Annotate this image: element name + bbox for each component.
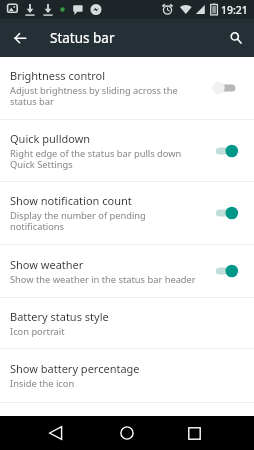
staticText: Quick pulldown (10, 131, 91, 146)
staticText: Status bar (50, 29, 115, 47)
button[interactable]: Recents (172, 416, 216, 450)
staticText: Brightness control (10, 68, 105, 83)
staticText: Show battery percentage (10, 361, 140, 376)
button[interactable] (212, 262, 239, 280)
button[interactable] (212, 204, 239, 222)
staticText: Inside the icon (10, 377, 75, 390)
button[interactable]: Search (214, 19, 254, 57)
button[interactable]: Show weather (0, 245, 254, 297)
button[interactable]: Battery status style (0, 298, 254, 348)
staticText: Show notification count (10, 193, 132, 208)
staticText: Icon portrait (10, 325, 65, 338)
staticText: Display the number of pending notificati… (10, 209, 196, 233)
staticText: Battery status style (10, 309, 109, 324)
button[interactable]: Quick pulldown (0, 120, 254, 181)
button[interactable]: Brightness control (0, 57, 254, 119)
staticText: Show weather (10, 257, 84, 272)
button[interactable]: Back (34, 416, 78, 450)
button[interactable]: Home (105, 416, 149, 450)
button[interactable]: Show battery percentage (0, 349, 254, 402)
button[interactable]: Back (0, 19, 40, 57)
button[interactable]: Show notification count (0, 182, 254, 244)
staticText: Adjust brightness by sliding across the … (10, 84, 196, 108)
staticText: Right edge of the status bar pulls down … (10, 147, 196, 171)
button[interactable] (212, 79, 239, 97)
staticText: Show the weather in the status bar heade… (10, 273, 196, 286)
button[interactable] (212, 142, 239, 160)
staticText: 19:21 (221, 3, 248, 17)
